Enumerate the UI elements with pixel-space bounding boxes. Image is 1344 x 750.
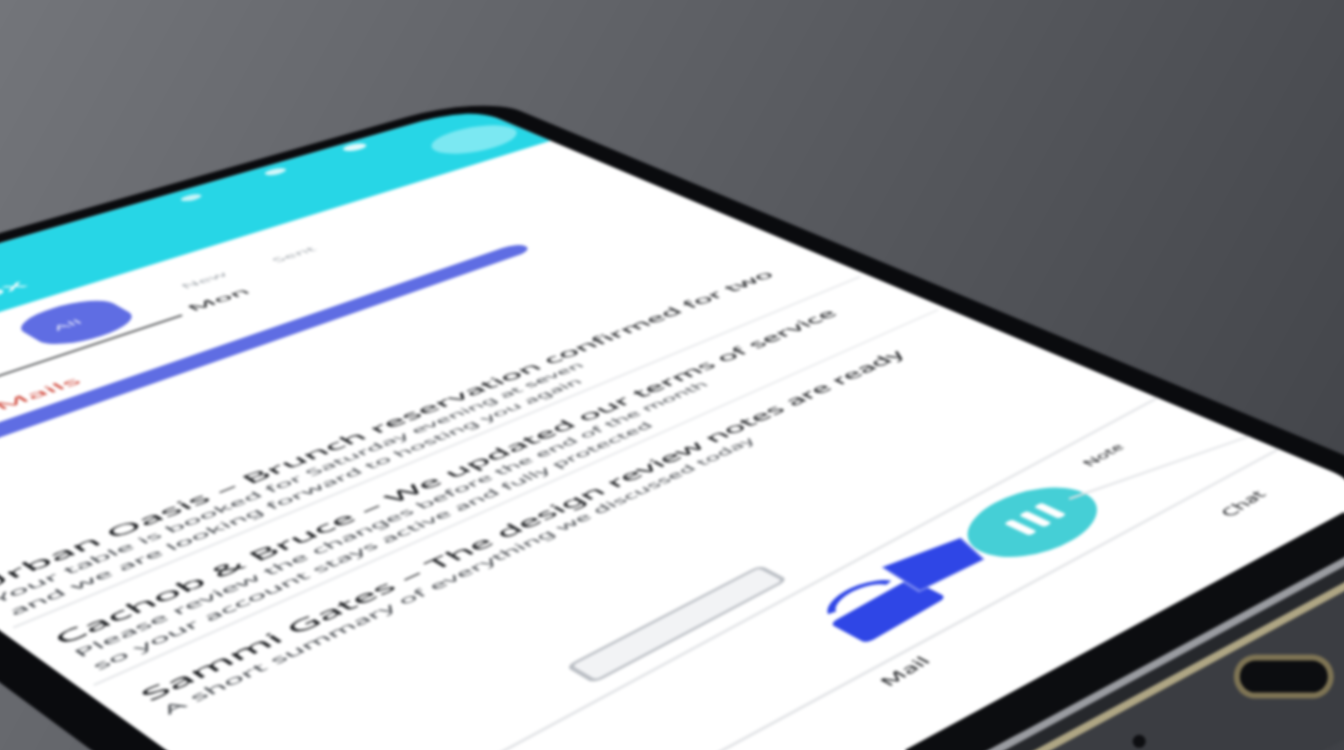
button[interactable]: Gallery bbox=[848, 516, 1044, 621]
button[interactable]: Sent filter bbox=[260, 232, 362, 269]
button[interactable]: Playlist bbox=[927, 470, 1136, 580]
button[interactable]: Urban Oasis message bbox=[0, 254, 872, 635]
button[interactable]: Cachob and Bruce message bbox=[52, 291, 962, 702]
button[interactable]: All filter bbox=[0, 293, 144, 348]
button[interactable]: Shopping bbox=[780, 555, 989, 669]
button[interactable]: Sammi Gates message bbox=[148, 330, 1059, 750]
button[interactable]: New filter bbox=[168, 256, 275, 295]
button[interactable]: Account bbox=[417, 120, 532, 160]
